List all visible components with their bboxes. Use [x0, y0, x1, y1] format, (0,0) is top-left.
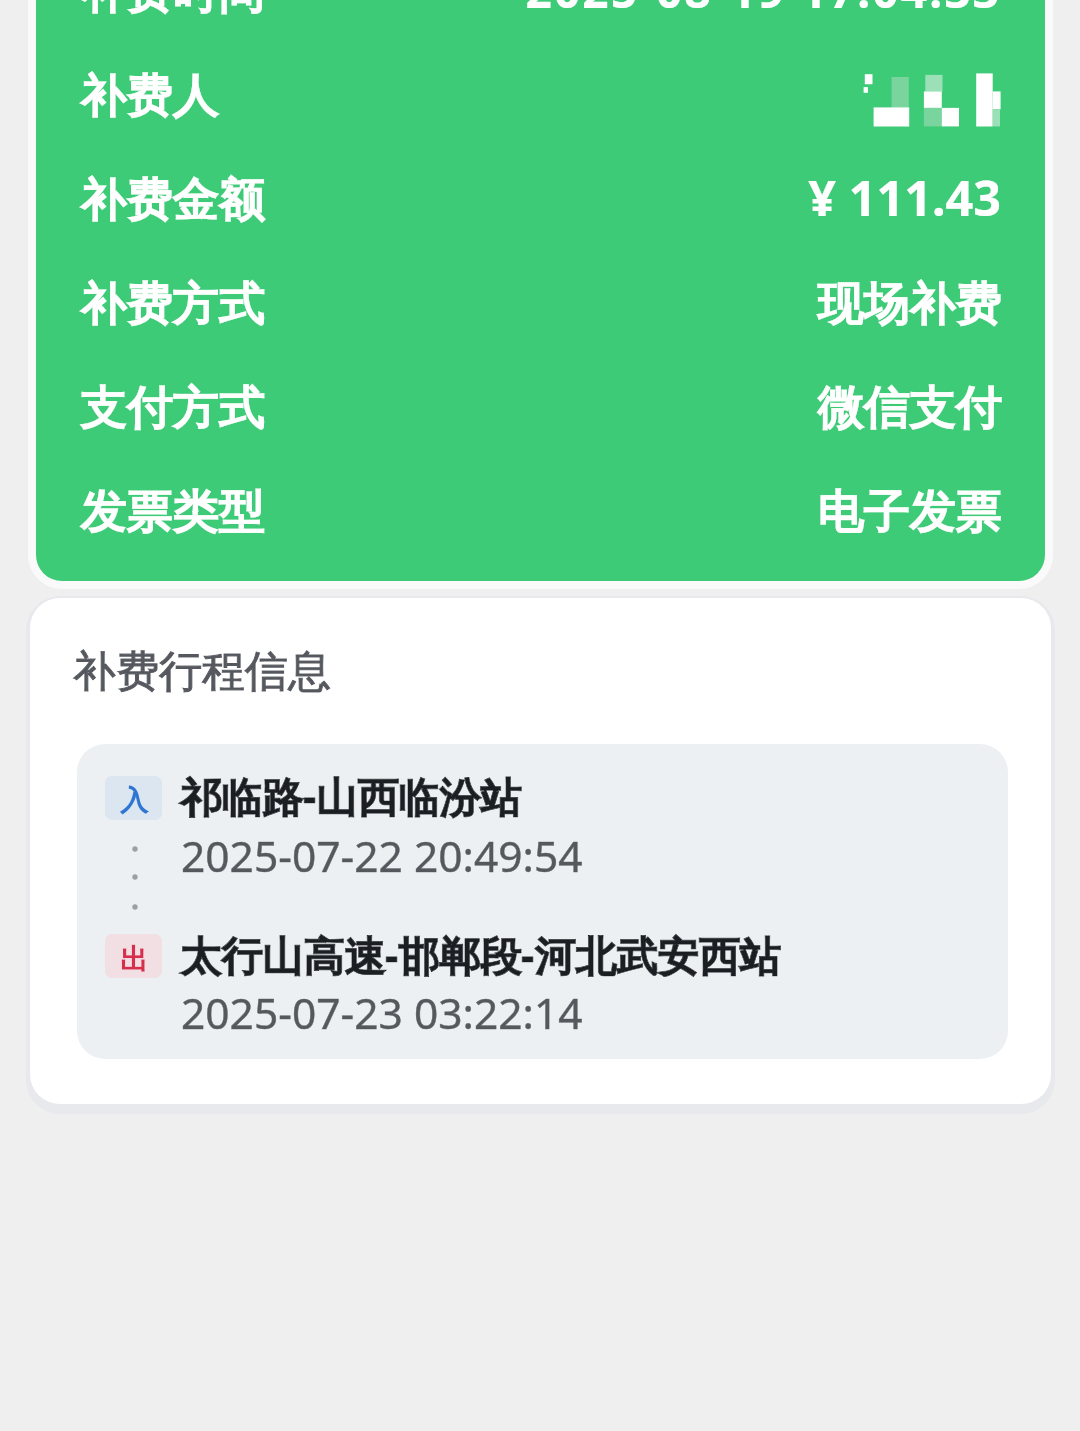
staticText: 补费时间 [80, 0, 264, 22]
staticText: 入 [120, 783, 148, 818]
staticText: 出 [120, 942, 148, 977]
staticText: ¥ 111.43 [808, 164, 1001, 230]
staticText: 2025-07-23 03:22:14 [181, 984, 583, 1042]
staticText: 补费人 [80, 68, 218, 126]
staticText: 太行山高速-邯郸段-河北武安西站 [180, 927, 781, 983]
staticText: 祁临路-山西临汾站 [180, 768, 522, 824]
staticText: 微信支付 [817, 380, 1001, 438]
staticText: 2025-07-23 03:22:14 [181, 984, 583, 1042]
staticText: 补费行程信息 [73, 645, 331, 699]
staticText: 太行山高速-邯郸段-河北武安西站 [180, 927, 781, 983]
staticText: 2025-07-22 20:49:54 [181, 827, 583, 885]
staticText: 补费方式 [80, 276, 264, 334]
staticText: 补费行程信息 [73, 645, 331, 699]
staticText: 补费金额 [80, 172, 264, 230]
staticText: 2025-07-22 20:49:54 [181, 827, 583, 885]
button[interactable]: 入 [77, 744, 1008, 1059]
staticText: 现场补费 [817, 276, 1001, 334]
staticText: 祁临路-山西临汾站 [180, 768, 522, 824]
staticText: 电子发票 [817, 484, 1001, 542]
other: 补费人姓名已隐藏 [857, 64, 1001, 130]
button[interactable]: 补费时间 [36, 0, 1045, 581]
staticText: 发票类型 [80, 484, 264, 542]
staticText: 2025-08-19 17:04:33 [525, 0, 1001, 22]
staticText: 支付方式 [80, 380, 264, 438]
